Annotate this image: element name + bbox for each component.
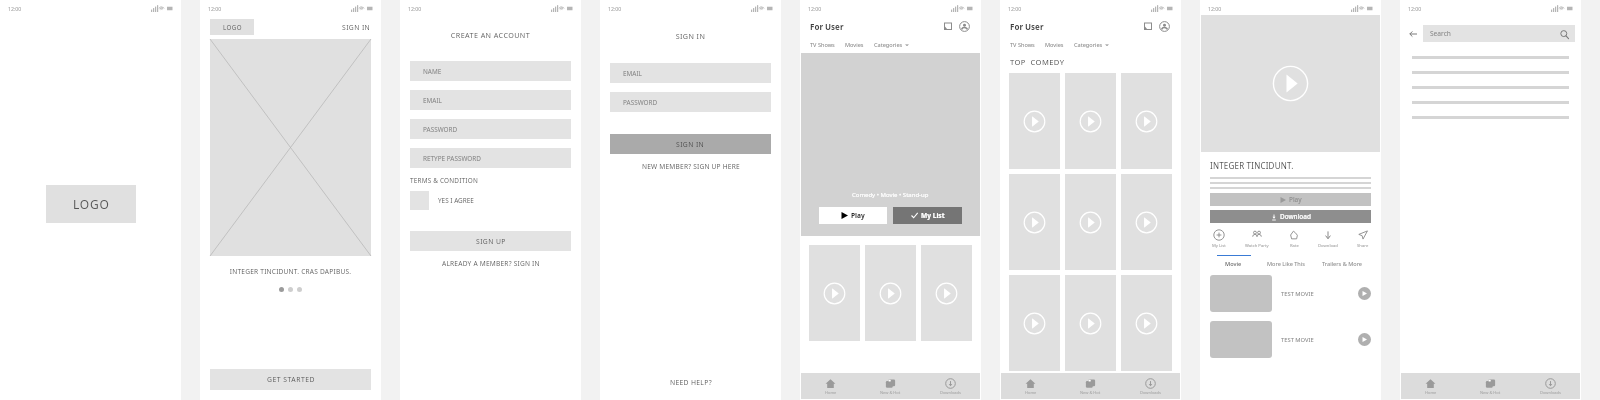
staticText: Movie: [1225, 260, 1242, 268]
button[interactable]: Movies: [1045, 41, 1064, 49]
staticText: TOP COMEDY: [1010, 57, 1065, 67]
button[interactable]: Downloads: [1120, 373, 1180, 399]
button[interactable]: Home: [1401, 373, 1460, 399]
button[interactable]: [279, 287, 284, 292]
button[interactable]: EMAIL: [610, 63, 771, 83]
button[interactable]: Back: [1406, 27, 1420, 41]
button[interactable]: TEST MOVIE: [1210, 275, 1371, 312]
button[interactable]: TEST MOVIE: [1210, 321, 1371, 358]
button[interactable]: Download: [1316, 229, 1340, 249]
button[interactable]: Watch Party: [1243, 229, 1271, 249]
staticText: Play: [851, 211, 865, 220]
staticText: PASSWORD: [423, 125, 458, 134]
button[interactable]: SIGN IN: [610, 134, 771, 154]
button[interactable]: My List: [893, 207, 962, 224]
staticText: For User: [810, 21, 844, 32]
staticText: CREATE AN ACCOUNT: [401, 30, 580, 40]
button[interactable]: Play: [1121, 73, 1172, 169]
button[interactable]: YES I AGREE: [410, 191, 474, 210]
staticText: INTEGER TINCIDUNT.: [1210, 160, 1294, 171]
staticText: Home: [825, 390, 837, 395]
button[interactable]: NEW MEMBER? SIGN UP HERE: [610, 162, 771, 171]
button[interactable]: LOGO: [46, 185, 136, 223]
staticText: Downloads: [1140, 390, 1161, 395]
button[interactable]: NAME: [410, 61, 571, 81]
button[interactable]: Play: [1210, 193, 1371, 206]
button[interactable]: PASSWORD: [610, 92, 771, 112]
staticText: 12:00: [8, 5, 22, 12]
button[interactable]: Play: [1009, 275, 1060, 371]
button[interactable]: Downloads: [920, 373, 980, 399]
button[interactable]: GET STARTED: [210, 369, 371, 390]
button[interactable]: Play: [1121, 275, 1172, 371]
button[interactable]: Play: [819, 207, 887, 224]
button[interactable]: Play: [1009, 174, 1060, 270]
button[interactable]: Play: [1009, 73, 1060, 169]
button[interactable]: My List: [1210, 229, 1228, 249]
button[interactable]: Home: [801, 373, 860, 399]
button[interactable]: Categories: [1074, 41, 1109, 49]
button[interactable]: Play: [921, 245, 972, 341]
staticText: Trailers & More: [1322, 260, 1363, 268]
button[interactable]: LOGO: [210, 19, 254, 35]
staticText: GET STARTED: [267, 375, 315, 384]
button[interactable]: Downloads: [1520, 373, 1580, 399]
button[interactable]: TV Shows: [1010, 41, 1035, 49]
staticText: EMAIL: [623, 69, 642, 78]
staticText: Comedy • Movie • Stand-up: [852, 191, 929, 199]
button[interactable]: RETYPE PASSWORD: [410, 148, 571, 168]
button[interactable]: Play: [865, 245, 916, 341]
staticText: Downloads: [1540, 390, 1561, 395]
staticText: TEST MOVIE: [1281, 336, 1358, 344]
button[interactable]: ALREADY A MEMBER? SIGN IN: [410, 259, 571, 268]
button[interactable]: More Like This: [1257, 255, 1314, 268]
button[interactable]: SIGN IN: [342, 23, 371, 32]
button[interactable]: TV Shows: [810, 41, 835, 49]
button[interactable]: Categories: [874, 41, 909, 49]
staticText: 12:00: [1208, 5, 1222, 12]
button[interactable]: Play: [1065, 174, 1116, 270]
button[interactable]: New & Hot: [1060, 373, 1120, 399]
staticText: 12:00: [408, 5, 422, 12]
button[interactable]: SIGN UP: [410, 231, 571, 251]
button[interactable]: NEED HELP?: [601, 378, 780, 387]
button[interactable]: Cast: [940, 19, 954, 33]
button[interactable]: Profile: [957, 19, 971, 33]
staticText: For User: [1010, 21, 1044, 32]
staticText: RETYPE PASSWORD: [423, 154, 481, 163]
button[interactable]: EMAIL: [410, 90, 571, 110]
button[interactable]: Play: [1065, 275, 1116, 371]
staticText: 12:00: [808, 5, 822, 12]
button[interactable]: Share: [1355, 229, 1371, 249]
staticText: Download: [1280, 212, 1311, 221]
staticText: SIGN IN: [342, 23, 371, 32]
button[interactable]: Search: [1423, 25, 1575, 42]
button[interactable]: Trailers & More: [1314, 255, 1371, 268]
button[interactable]: PASSWORD: [410, 119, 571, 139]
button[interactable]: Cast: [1140, 19, 1154, 33]
staticText: Categories: [1074, 41, 1103, 49]
button[interactable]: [288, 287, 293, 292]
button[interactable]: Download: [1210, 210, 1371, 223]
button[interactable]: New & Hot: [860, 373, 920, 399]
other: Play: [1358, 333, 1371, 346]
button[interactable]: Play: [1065, 73, 1116, 169]
button[interactable]: Home: [1001, 373, 1060, 399]
button[interactable]: Play: [809, 245, 860, 341]
button[interactable]: Movies: [845, 41, 864, 49]
button[interactable]: Movie: [1210, 255, 1257, 268]
staticText: Search: [1430, 29, 1559, 38]
other: Play: [1358, 287, 1371, 300]
button[interactable]: Rate: [1286, 229, 1302, 249]
staticText: Home: [1425, 390, 1437, 395]
button[interactable]: Play: [1121, 174, 1172, 270]
staticText: NEED HELP?: [670, 378, 712, 387]
button[interactable]: Profile: [1157, 19, 1171, 33]
button[interactable]: New & Hot: [1460, 373, 1520, 399]
button[interactable]: [297, 287, 302, 292]
